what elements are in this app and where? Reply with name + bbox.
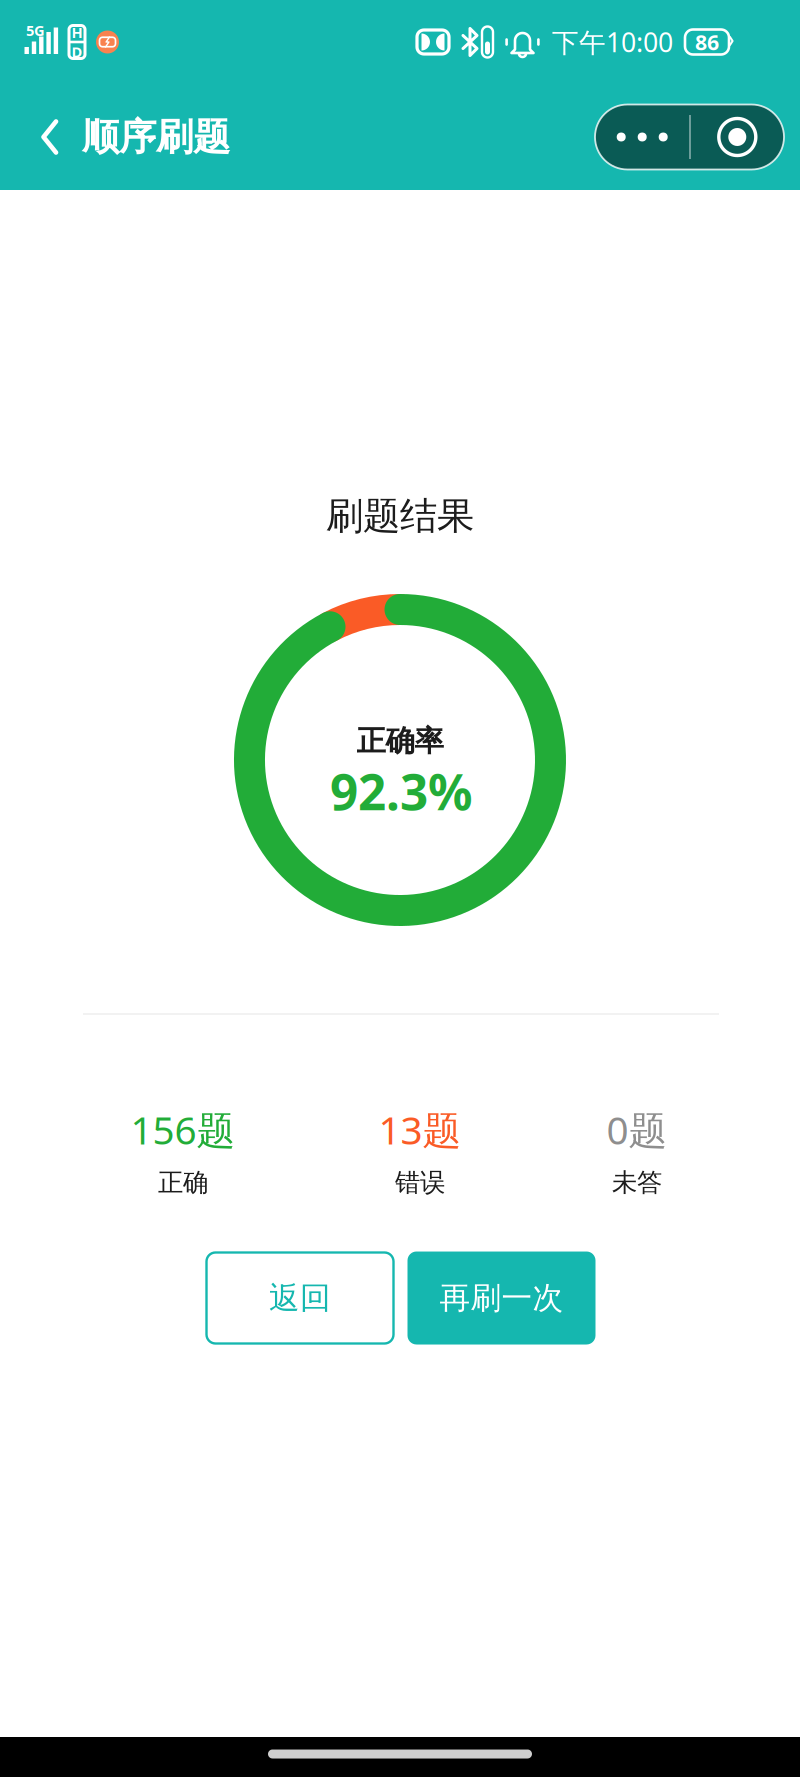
- button[interactable]: 返回: [22, 101, 78, 173]
- staticText: 错误: [395, 1167, 445, 1198]
- staticText: 5G: [26, 20, 45, 40]
- staticText: 92.3%: [330, 758, 472, 824]
- staticText: 13题: [378, 1104, 461, 1155]
- staticText: 正确: [158, 1167, 208, 1198]
- button[interactable]: 返回: [206, 1252, 393, 1343]
- staticText: 正确率: [356, 723, 443, 759]
- staticText: 下午10:00: [552, 24, 673, 60]
- staticText: 未答: [612, 1167, 662, 1198]
- staticText: 86: [695, 28, 719, 56]
- staticText: 顺序刷题: [82, 114, 230, 160]
- button[interactable]: 再刷一次: [407, 1251, 595, 1344]
- staticText: D: [71, 42, 82, 61]
- staticText: 返回: [269, 1279, 331, 1317]
- staticText: 156题: [130, 1104, 235, 1155]
- staticText: 刷题结果: [326, 493, 474, 539]
- button[interactable]: 更多: [595, 104, 784, 169]
- staticText: H: [71, 22, 82, 42]
- staticText: 再刷一次: [439, 1279, 563, 1317]
- staticText: 0题: [606, 1104, 667, 1155]
